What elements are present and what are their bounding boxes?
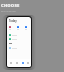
button[interactable]: Category <box>17 26 19 30</box>
button[interactable]: Category <box>25 26 27 30</box>
staticText: Today <box>9 19 17 23</box>
staticText: what to do next <box>1 10 16 13</box>
button[interactable]: Category <box>9 26 11 30</box>
staticText: CHOOSE <box>1 3 20 9</box>
button[interactable] <box>9 37 29 41</box>
button[interactable]: Home <box>8 60 14 66</box>
button[interactable]: Profile <box>26 60 30 66</box>
button[interactable]: Search <box>14 60 20 66</box>
button[interactable] <box>9 46 29 50</box>
button[interactable] <box>9 33 29 37</box>
button[interactable]: Tasks <box>20 60 26 66</box>
